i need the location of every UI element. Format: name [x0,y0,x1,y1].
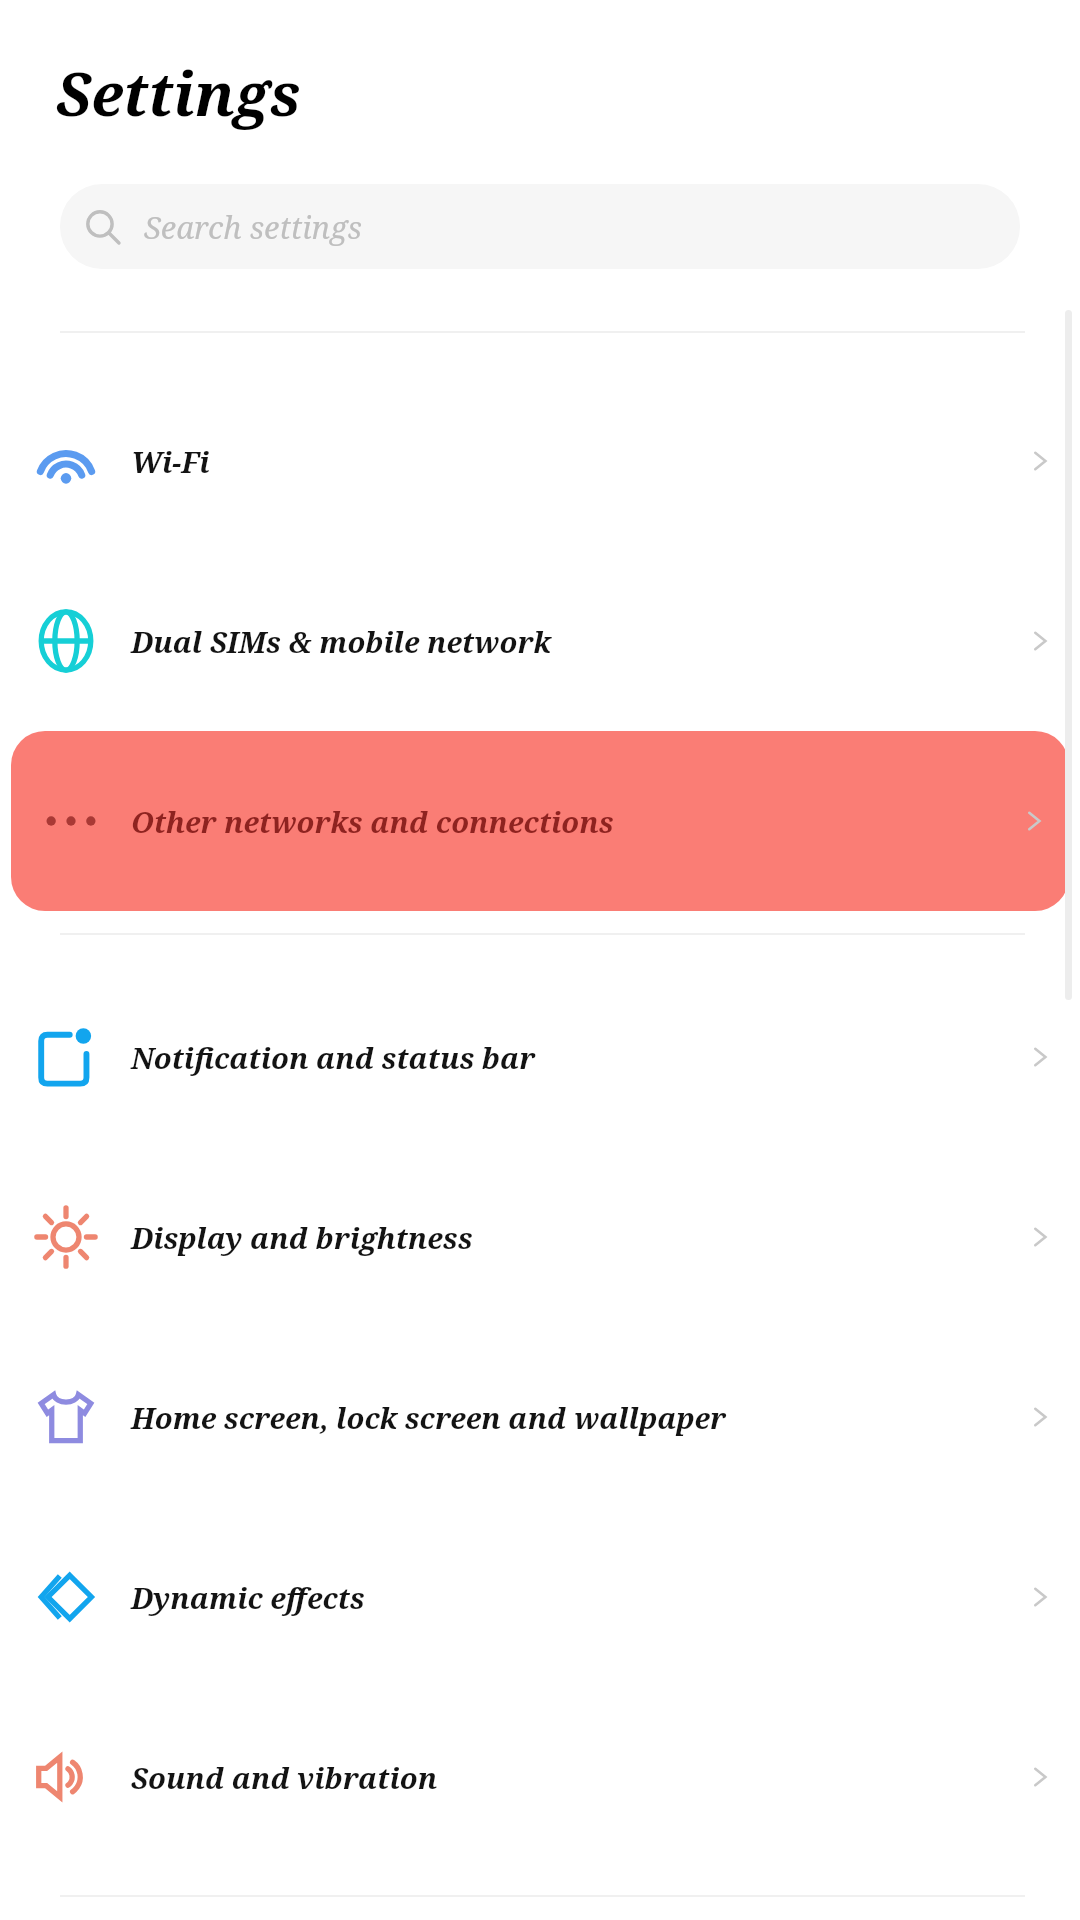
button[interactable]: Sound and vibration [0,1687,1080,1867]
other: Sound and vibration [35,1746,97,1808]
other: Notification and status bar [35,1026,97,1088]
staticText: Dual SIMs & mobile network [131,622,551,661]
button[interactable]: Home screen and wallpaper [0,1327,1080,1507]
button[interactable]: Dynamic effects [0,1507,1080,1687]
staticText: Notification and status bar [131,1038,536,1077]
other: Other networks [40,790,102,852]
staticText: Wi-Fi [131,442,210,481]
staticText: Dynamic effects [131,1578,365,1617]
other: Display and brightness [35,1206,97,1268]
staticText: Display and brightness [131,1218,473,1257]
button[interactable]: Other networks [11,731,1069,911]
staticText: Other networks and connections [131,802,614,841]
other: Dynamic effects [35,1566,97,1628]
button[interactable]: Notification and status bar [0,967,1080,1147]
staticText: Settings [56,52,301,134]
staticText: Home screen, lock screen and wallpaper [131,1398,727,1437]
other: Mobile network [35,610,97,672]
button[interactable]: Search settings [60,184,1020,269]
staticText: Search settings [144,206,362,248]
button[interactable]: Wi-Fi [0,371,1080,551]
other: Home screen and wallpaper [35,1386,97,1448]
button[interactable]: Mobile network [0,551,1080,731]
button[interactable]: Display and brightness [0,1147,1080,1327]
other: Wi-Fi [35,430,97,492]
staticText: Sound and vibration [131,1758,438,1797]
